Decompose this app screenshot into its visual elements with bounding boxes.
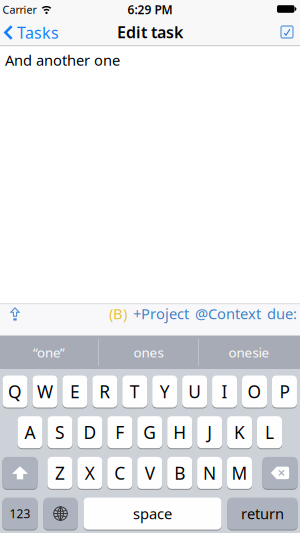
button[interactable]: P: [272, 375, 297, 408]
button[interactable]: L: [257, 416, 282, 449]
button[interactable]: K: [227, 416, 252, 449]
staticText: D: [83, 421, 96, 444]
staticText: Y: [160, 380, 170, 403]
staticText: T: [130, 380, 140, 403]
staticText: U: [188, 380, 201, 403]
button[interactable]: ones: [99, 336, 197, 369]
staticText: W: [37, 380, 53, 403]
button[interactable]: +Project: [133, 304, 189, 323]
button[interactable]: Save task: [277, 22, 297, 42]
staticText: 123: [9, 506, 30, 521]
button[interactable]: B: [167, 456, 192, 489]
staticText: B: [174, 461, 185, 484]
staticText: E: [70, 380, 80, 403]
button[interactable]: Tasks: [4, 22, 59, 43]
staticText: A: [24, 421, 35, 444]
staticText: J: [207, 421, 212, 444]
staticText: Q: [8, 380, 22, 403]
button[interactable]: return: [227, 497, 297, 530]
button[interactable]: N: [197, 456, 222, 489]
button[interactable]: V: [137, 456, 162, 489]
button[interactable]: Z: [47, 456, 72, 489]
button[interactable]: C: [107, 456, 132, 489]
staticText: S: [55, 421, 65, 444]
button[interactable]: @Context: [195, 304, 261, 323]
button[interactable]: R: [92, 375, 117, 408]
staticText: C: [114, 461, 125, 484]
button[interactable]: Prioritize: [5, 303, 25, 325]
button[interactable]: E: [62, 375, 87, 408]
staticText: return: [241, 504, 284, 523]
staticText: K: [234, 421, 245, 444]
staticText: Carrier: [2, 2, 36, 17]
staticText: “one”: [33, 343, 65, 361]
staticText: ones: [133, 343, 163, 361]
button[interactable]: H: [167, 416, 192, 449]
button[interactable]: M: [227, 456, 252, 489]
staticText: G: [143, 421, 156, 444]
staticText: N: [203, 461, 216, 484]
staticText: due:: [267, 304, 297, 323]
staticText: @Context: [195, 304, 261, 323]
button[interactable]: “one”: [0, 336, 97, 369]
staticText: (B): [109, 304, 127, 323]
button[interactable]: S: [47, 416, 72, 449]
staticText: Tasks: [17, 22, 59, 43]
staticText: onesie: [228, 343, 269, 361]
button[interactable]: F: [107, 416, 132, 449]
staticText: Edit task: [117, 21, 183, 43]
button[interactable]: space: [83, 497, 221, 530]
button[interactable]: Next keyboard: [43, 497, 77, 530]
button[interactable]: O: [242, 375, 267, 408]
button[interactable]: (B): [109, 304, 127, 323]
button[interactable]: due:: [267, 304, 297, 323]
button[interactable]: T: [122, 375, 147, 408]
button[interactable]: U: [182, 375, 207, 408]
staticText: R: [99, 380, 110, 403]
button[interactable]: Y: [152, 375, 177, 408]
staticText: +Project: [133, 304, 189, 323]
button[interactable]: J: [197, 416, 222, 449]
staticText: O: [247, 380, 261, 403]
staticText: 6:29 PM: [127, 1, 172, 17]
staticText: L: [265, 421, 274, 444]
staticText: I: [222, 380, 228, 403]
staticText: Z: [55, 461, 65, 484]
staticText: V: [145, 461, 155, 484]
button[interactable]: onesie: [199, 336, 299, 369]
staticText: H: [173, 421, 186, 444]
staticText: X: [85, 461, 95, 484]
button[interactable]: Delete: [262, 456, 297, 489]
staticText: space: [133, 504, 172, 523]
button[interactable]: Q: [2, 375, 27, 408]
staticText: M: [231, 461, 247, 484]
button[interactable]: G: [137, 416, 162, 449]
staticText: And another one: [5, 50, 120, 70]
button[interactable]: I: [212, 375, 237, 408]
button[interactable]: W: [32, 375, 57, 408]
button[interactable]: X: [77, 456, 102, 489]
button[interactable]: D: [77, 416, 102, 449]
button[interactable]: A: [17, 416, 42, 449]
button[interactable]: Shift: [2, 456, 37, 489]
staticText: F: [115, 421, 124, 444]
button[interactable]: 123: [2, 497, 37, 530]
staticText: P: [279, 380, 289, 403]
